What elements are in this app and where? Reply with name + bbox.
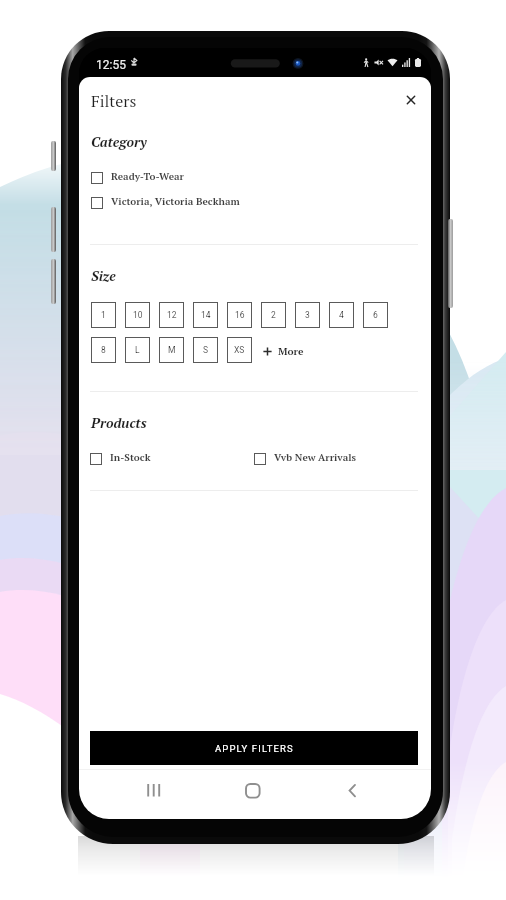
button[interactable]: Recent apps — [135, 772, 173, 810]
button[interactable]: Back — [332, 772, 370, 810]
staticText: Victoria, Victoria Beckham — [111, 195, 240, 208]
staticText: In-Stock — [110, 451, 151, 464]
button[interactable]: In-Stock — [90, 452, 151, 465]
button[interactable]: 2 — [261, 302, 286, 328]
staticText: Vvb New Arrivals — [274, 451, 357, 464]
staticText: APPLY FILTERS — [215, 743, 294, 754]
button[interactable]: XS — [227, 337, 252, 363]
staticText: 12 — [167, 310, 177, 320]
staticText: Size — [91, 267, 116, 285]
staticText: L — [135, 345, 140, 355]
staticText: 8 — [101, 345, 106, 355]
staticText: 10 — [133, 310, 143, 320]
staticText: 6 — [373, 310, 378, 320]
button[interactable]: Vvb New Arrivals — [254, 452, 357, 465]
button[interactable]: 10 — [125, 302, 150, 328]
staticText: Products — [91, 414, 147, 432]
button[interactable]: 4 — [329, 302, 354, 328]
button[interactable]: M — [159, 337, 184, 363]
staticText: S — [203, 345, 209, 355]
button[interactable]: Ready-To-Wear — [91, 171, 184, 184]
button[interactable]: Home — [234, 772, 272, 810]
button[interactable]: 14 — [193, 302, 218, 328]
staticText: 3 — [305, 310, 310, 320]
button[interactable]: Close — [396, 85, 426, 115]
staticText: Category — [91, 133, 147, 151]
staticText: Ready-To-Wear — [111, 170, 184, 183]
button[interactable]: 3 — [295, 302, 320, 328]
staticText: XS — [234, 345, 245, 355]
staticText: 1 — [101, 310, 106, 320]
staticText: 16 — [235, 310, 245, 320]
staticText: More — [278, 344, 304, 358]
staticText: Filters — [91, 90, 137, 111]
button[interactable]: Victoria, Victoria Beckham — [91, 196, 240, 209]
button[interactable]: S — [193, 337, 218, 363]
staticText: 14 — [201, 310, 211, 320]
staticText: 2 — [271, 310, 276, 320]
staticText: M — [168, 345, 176, 355]
staticText: 12:55 — [96, 58, 126, 72]
button[interactable]: 1 — [91, 302, 116, 328]
staticText: 4 — [339, 310, 344, 320]
button[interactable]: 6 — [363, 302, 388, 328]
button[interactable]: L — [125, 337, 150, 363]
button[interactable]: More — [263, 344, 304, 358]
button[interactable]: 12 — [159, 302, 184, 328]
button[interactable]: 8 — [91, 337, 116, 363]
button[interactable]: 16 — [227, 302, 252, 328]
button[interactable]: APPLY FILTERS — [90, 731, 418, 765]
